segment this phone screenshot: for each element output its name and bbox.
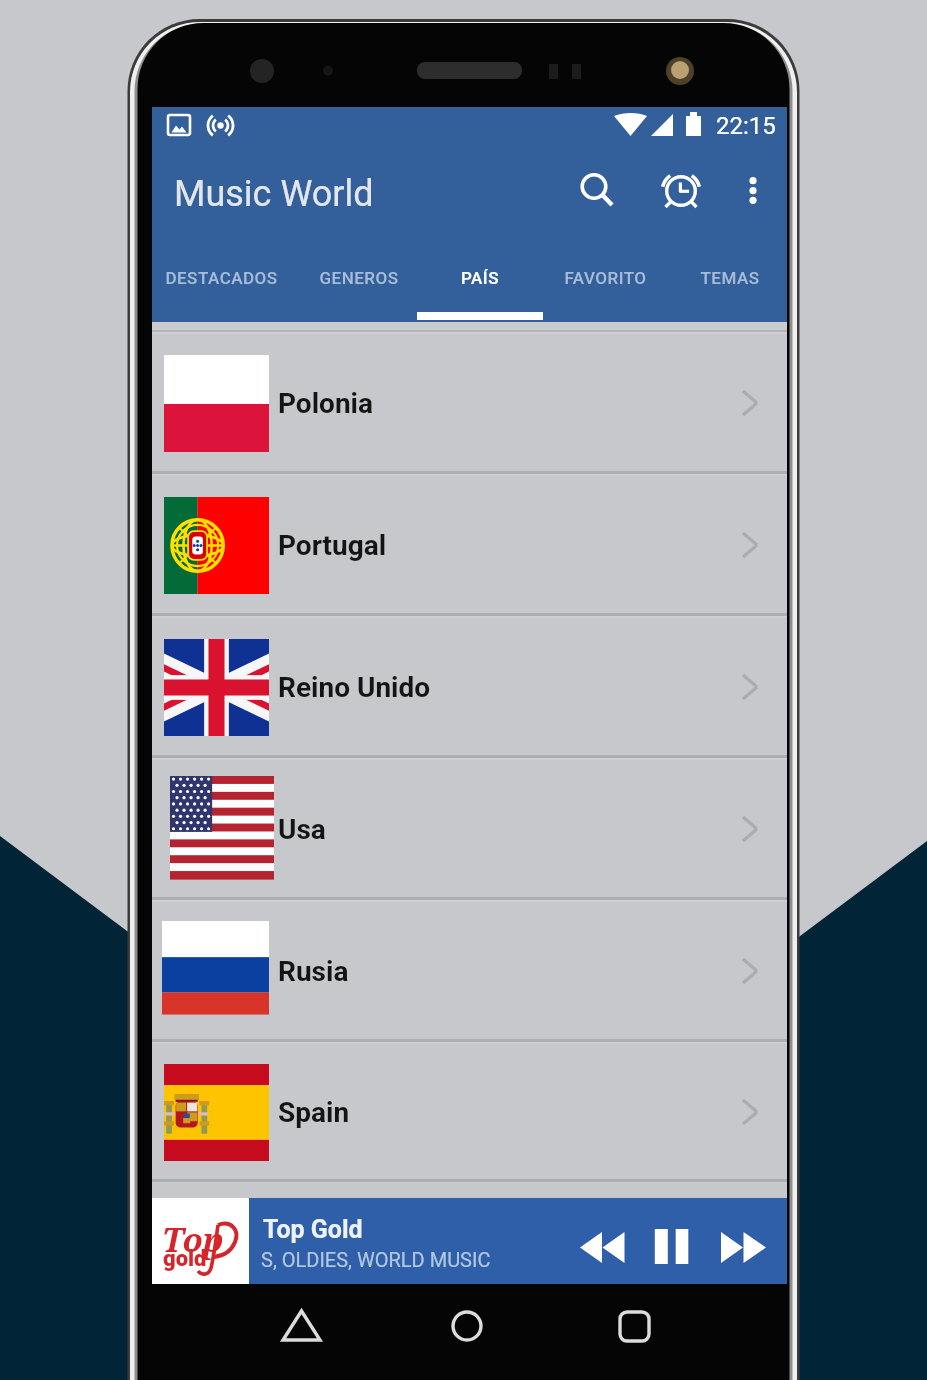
button[interactable]: Search bbox=[562, 155, 626, 219]
button[interactable]: PAÍS bbox=[417, 237, 543, 322]
staticText: GENEROS bbox=[319, 268, 399, 288]
staticText: Top bbox=[162, 1217, 224, 1262]
button[interactable]: FAVORITO bbox=[543, 237, 668, 322]
button[interactable]: Pause bbox=[635, 1207, 703, 1275]
button[interactable]: TEMAS bbox=[673, 237, 787, 322]
staticText: Rusia bbox=[278, 955, 349, 988]
staticText: Spain bbox=[278, 1096, 350, 1129]
staticText: gold bbox=[163, 1246, 207, 1272]
staticText: DESTACADOS bbox=[165, 268, 278, 288]
staticText: S, OLDIES, WORLD MUSIC bbox=[261, 1248, 491, 1271]
staticText: Portugal bbox=[278, 529, 387, 562]
staticText: Reino Unido bbox=[278, 671, 431, 704]
button[interactable]: Polonia bbox=[152, 332, 787, 474]
staticText: 22:15 bbox=[716, 112, 776, 140]
staticText: Top Gold bbox=[263, 1215, 363, 1244]
button[interactable]: DESTACADOS bbox=[146, 237, 296, 322]
button[interactable]: Rusia bbox=[152, 900, 787, 1042]
button[interactable]: Alarm bbox=[649, 159, 713, 223]
button[interactable]: Previous bbox=[560, 1207, 628, 1275]
staticText: TEMAS bbox=[700, 268, 760, 288]
button[interactable]: More options bbox=[729, 167, 777, 215]
staticText: Usa bbox=[278, 813, 326, 846]
staticText: FAVORITO bbox=[564, 268, 647, 288]
button[interactable]: Spain bbox=[152, 1042, 787, 1182]
button[interactable]: Usa bbox=[152, 758, 787, 900]
button[interactable]: Next bbox=[701, 1207, 769, 1275]
staticText: Polonia bbox=[278, 387, 373, 420]
button[interactable]: GENEROS bbox=[296, 237, 421, 322]
staticText: PAÍS bbox=[461, 268, 499, 288]
button[interactable]: Portugal bbox=[152, 474, 787, 616]
staticText: Music World bbox=[174, 173, 374, 215]
button[interactable]: Reino Unido bbox=[152, 616, 787, 758]
